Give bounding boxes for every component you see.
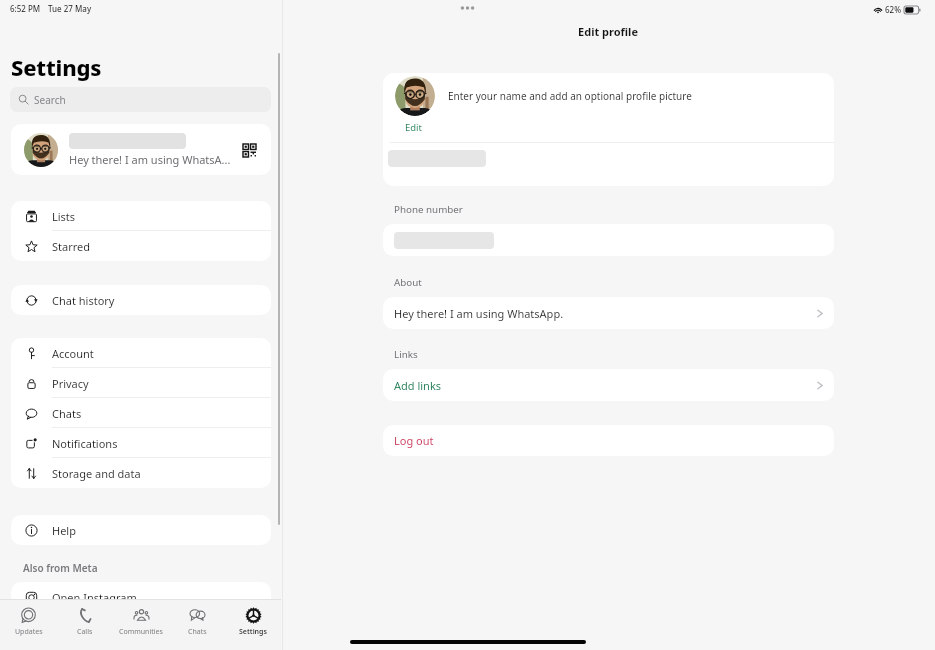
button[interactable]: Change profile photo	[395, 76, 435, 116]
button[interactable]: Show QR code	[238, 139, 260, 161]
staticText: Tue 27 May	[48, 3, 92, 14]
staticText: Search	[34, 93, 66, 107]
staticText: Help	[52, 523, 76, 538]
staticText: Edit	[405, 121, 423, 134]
staticText: Lists	[52, 209, 76, 224]
staticText: 6:52 PM	[10, 3, 41, 14]
staticText: Links	[394, 348, 418, 361]
button[interactable]: Add links	[383, 369, 834, 401]
button[interactable]: Help	[11, 515, 271, 545]
button[interactable]: Lists	[11, 201, 271, 231]
button[interactable]: Starred	[11, 231, 271, 261]
staticText: 62%	[885, 4, 901, 15]
staticText: About	[394, 276, 422, 289]
staticText: Chat history	[52, 293, 115, 308]
button[interactable]: Hey there! I am using WhatsA...	[11, 124, 271, 175]
staticText: Storage and data	[52, 466, 141, 481]
button[interactable]: Chats	[11, 398, 271, 428]
button[interactable]: Edit	[400, 118, 428, 137]
staticText: Hey there! I am using WhatsA...	[69, 152, 231, 167]
staticText: Add links	[394, 378, 442, 393]
button[interactable]: Communities	[113, 600, 169, 650]
staticText: Edit profile	[281, 24, 935, 39]
button[interactable]: Chats	[169, 600, 225, 650]
staticText: Communities	[119, 627, 163, 637]
staticText: Starred	[52, 239, 91, 254]
staticText: Open Instagram	[52, 590, 137, 605]
staticText: Phone number	[394, 203, 463, 216]
button[interactable]: Updates	[0, 600, 57, 650]
button[interactable]: More options	[455, 1, 480, 15]
button[interactable]: Notifications	[11, 428, 271, 458]
button[interactable]: Privacy	[11, 368, 271, 398]
staticText: Chats	[52, 406, 82, 421]
staticText: Notifications	[52, 436, 118, 451]
button[interactable]: Hey there! I am using WhatsApp.	[383, 297, 834, 329]
button[interactable]: Storage and data	[11, 458, 271, 488]
button[interactable]: Open Instagram	[11, 582, 271, 612]
staticText: Log out	[394, 433, 434, 448]
staticText: Hey there! I am using WhatsApp.	[394, 306, 564, 321]
staticText: Also from Meta	[23, 561, 98, 575]
staticText: Account	[52, 346, 94, 361]
staticText: Settings	[239, 627, 267, 637]
staticText: Chats	[188, 627, 207, 637]
button[interactable]: Search	[10, 87, 271, 112]
staticText: Enter your name and add an optional prof…	[448, 89, 692, 103]
button[interactable]: Log out	[383, 425, 834, 456]
staticText: Settings	[11, 52, 102, 82]
staticText: Calls	[77, 627, 93, 637]
staticText: Updates	[15, 627, 43, 637]
button[interactable]: Chat history	[11, 285, 271, 315]
button[interactable]: Settings	[225, 600, 281, 650]
button[interactable]: Account	[11, 338, 271, 368]
button[interactable]	[383, 224, 834, 256]
staticText: Privacy	[52, 376, 89, 391]
button[interactable]: Calls	[57, 600, 113, 650]
